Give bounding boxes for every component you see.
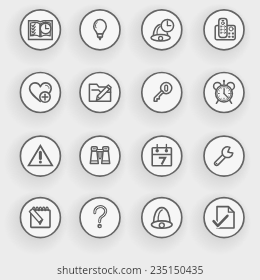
button[interactable]: Help bbox=[79, 197, 121, 239]
button[interactable]: Edit folder bbox=[79, 72, 121, 114]
button[interactable]: Settings bbox=[203, 135, 245, 177]
button[interactable]: Key bbox=[141, 72, 183, 114]
button[interactable]: Notifications bbox=[141, 197, 183, 239]
button[interactable]: Idea bbox=[79, 9, 121, 51]
button[interactable]: Alarm bbox=[203, 72, 245, 114]
button[interactable]: Phone bbox=[203, 9, 245, 51]
button[interactable]: Reminder bbox=[141, 9, 183, 51]
button[interactable]: Calendar bbox=[141, 135, 183, 177]
button[interactable]: Planner bbox=[20, 9, 62, 51]
button[interactable]: Approved document bbox=[203, 197, 245, 239]
button[interactable]: Notes bbox=[20, 197, 62, 239]
staticText: shutterstock.com · 235150435 bbox=[57, 263, 204, 277]
button[interactable]: Search bbox=[79, 135, 121, 177]
button[interactable]: Add favourite bbox=[20, 72, 62, 114]
button[interactable]: Warning bbox=[20, 135, 62, 177]
